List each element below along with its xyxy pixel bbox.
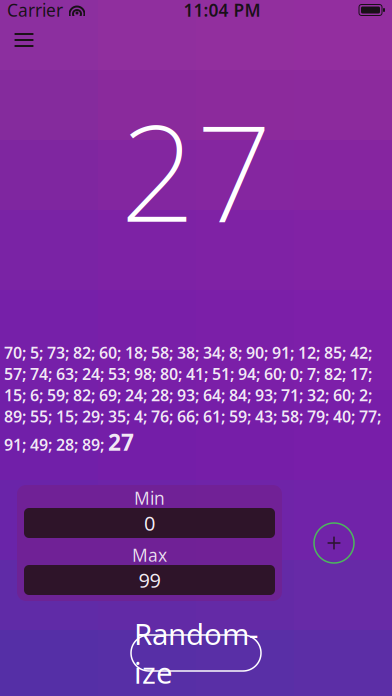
button[interactable]: Randomize xyxy=(131,635,261,671)
staticText: Max xyxy=(132,543,167,566)
button[interactable]: Menu xyxy=(2,20,46,60)
button[interactable]: 0 xyxy=(24,508,275,538)
staticText: 70; 5; 73; 82; 60; 18; 58; 38; 34; 8; 90… xyxy=(4,342,381,457)
staticText: 99 xyxy=(138,567,160,593)
staticText: 27 xyxy=(120,81,272,259)
button[interactable]: 99 xyxy=(24,565,275,595)
staticText: 11:04 PM xyxy=(183,0,260,21)
staticText: Min xyxy=(134,486,165,509)
staticText: Randomize xyxy=(134,614,258,692)
staticText: Carrier xyxy=(7,0,63,21)
staticText: 0 xyxy=(144,510,155,536)
button[interactable]: Add xyxy=(312,521,356,565)
